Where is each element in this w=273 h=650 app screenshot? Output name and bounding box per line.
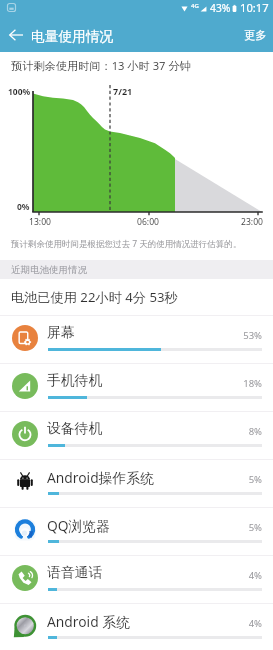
staticText: 53%: [232, 329, 262, 342]
staticText: 设备待机: [47, 420, 103, 437]
button[interactable]: QQ浏览器: [0, 507, 273, 555]
button[interactable]: Android操作系统: [0, 459, 273, 507]
staticText: Android 系统: [47, 612, 130, 631]
staticText: 屏幕: [47, 324, 75, 341]
staticText: 电量使用情况: [31, 28, 114, 45]
staticText: 43%: [210, 1, 231, 15]
staticText: 7/21: [113, 85, 133, 97]
staticText: 8%: [232, 425, 262, 438]
staticText: 4%: [232, 617, 262, 630]
staticText: 10:17: [240, 0, 269, 15]
staticText: 预计剩余使用时间：13 小时 37 分钟: [11, 58, 191, 73]
staticText: 23:00: [238, 216, 266, 228]
staticText: 近期电池使用情况: [11, 264, 87, 276]
staticText: 13:00: [26, 216, 54, 228]
staticText: QQ浏览器: [47, 516, 110, 535]
staticText: 语音通话: [47, 564, 103, 581]
button[interactable]: 语音通话: [0, 555, 273, 603]
staticText: 更多: [244, 28, 267, 42]
button[interactable]: 手机待机: [0, 363, 273, 411]
button[interactable]: 更多: [235, 18, 273, 52]
staticText: 5%: [232, 473, 262, 486]
staticText: 0%: [17, 201, 30, 213]
button[interactable]: Back: [0, 18, 32, 52]
staticText: 5%: [232, 521, 262, 534]
staticText: 18%: [232, 377, 262, 390]
button[interactable]: Android 系统: [0, 603, 273, 650]
staticText: Android操作系统: [47, 468, 154, 487]
staticText: 电池已使用 22小时 4分 53秒: [11, 288, 178, 306]
staticText: 手机待机: [47, 372, 103, 389]
staticText: 4G: [191, 2, 199, 10]
button[interactable]: 屏幕: [0, 315, 273, 363]
staticText: 预计剩余使用时间是根据您过去 7 天的使用情况进行估算的。: [11, 238, 242, 250]
staticText: 100%: [8, 86, 31, 98]
button[interactable]: 设备待机: [0, 411, 273, 459]
staticText: 06:00: [134, 216, 162, 228]
staticText: 4%: [232, 569, 262, 582]
